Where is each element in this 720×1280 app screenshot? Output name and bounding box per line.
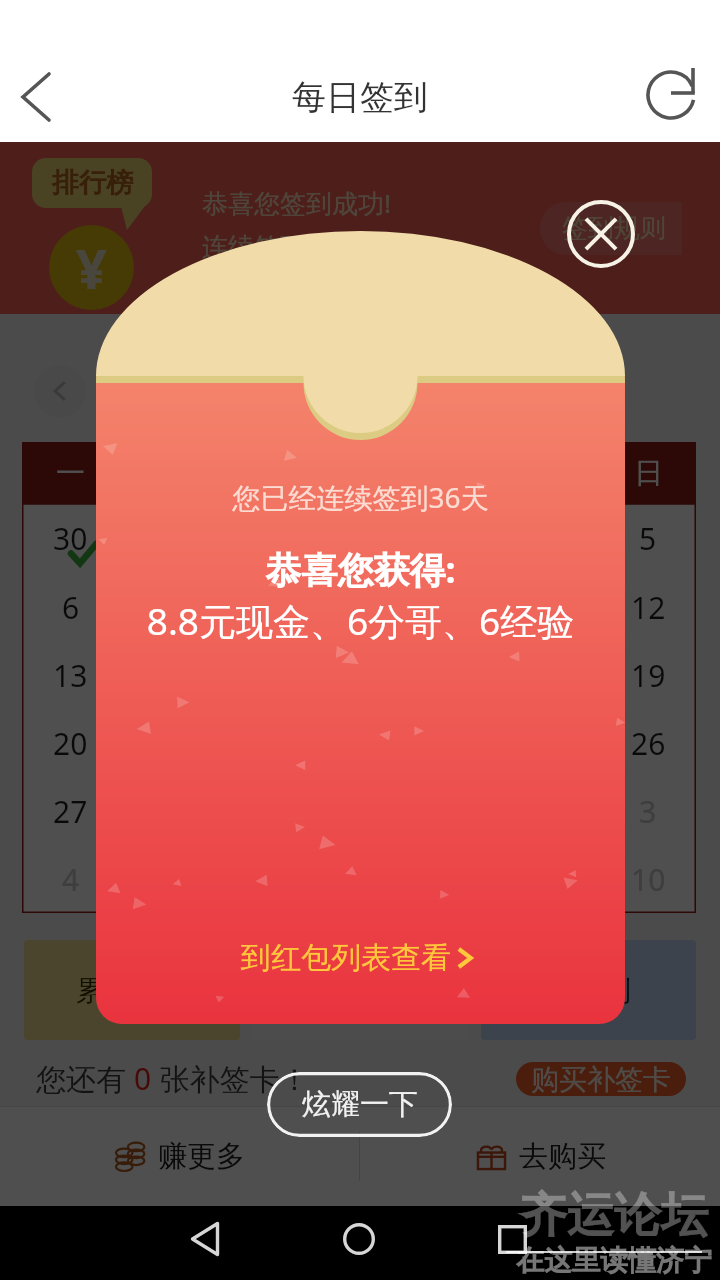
button[interactable]: 10 (408, 573, 504, 641)
button[interactable]: 19 (600, 641, 696, 709)
button[interactable]: 16 (312, 641, 408, 709)
button[interactable]: 9 (312, 573, 408, 641)
button[interactable]: Home (319, 1202, 399, 1276)
button[interactable]: 29 (216, 777, 312, 845)
button[interactable]: 排行榜 (32, 158, 152, 208)
button[interactable]: 18 (504, 641, 600, 709)
staticText: 26 (631, 723, 666, 764)
button[interactable]: 8 (408, 845, 504, 913)
button[interactable]: 26 (600, 709, 696, 777)
button[interactable]: 5 (119, 845, 216, 913)
button[interactable]: 6 (22, 573, 119, 641)
staticText: 7 (159, 587, 177, 628)
button[interactable]: 购买补签卡 (516, 1062, 686, 1096)
staticText: 连续签到36天 (202, 228, 362, 264)
button[interactable]: 6 (216, 845, 312, 913)
button[interactable]: 到红包列表查看 (96, 935, 625, 981)
staticText: 恭喜您获得: (96, 545, 625, 594)
button[interactable]: Close (567, 200, 635, 268)
button[interactable]: 20 (22, 709, 119, 777)
button[interactable]: 10 (600, 845, 696, 913)
button[interactable]: 30 (22, 504, 119, 573)
staticText: 张补签卡！ (152, 1058, 310, 1099)
staticText: 5 (639, 518, 657, 559)
staticText: 四 (346, 455, 375, 492)
button[interactable]: 2 (312, 504, 408, 573)
button[interactable]: 21 (119, 709, 216, 777)
staticText: 三 (250, 455, 279, 492)
staticText: 一 (56, 455, 85, 492)
staticText: 签到规则 (562, 212, 666, 245)
button[interactable]: 22 (216, 709, 312, 777)
button[interactable]: 9 (504, 845, 600, 913)
button[interactable]: 去购买 (360, 1106, 720, 1206)
button[interactable]: 赚更多 (0, 1106, 359, 1206)
button[interactable]: 30 (312, 777, 408, 845)
button[interactable]: 7 (119, 573, 216, 641)
staticText: 2 (351, 518, 369, 559)
button[interactable]: 24 (408, 709, 504, 777)
button[interactable]: 12 (600, 573, 696, 641)
staticText: 19 (631, 655, 666, 696)
staticText: 11 (535, 587, 570, 628)
button[interactable]: 23 (312, 709, 408, 777)
staticText: 在这里读懂济宁 (516, 1243, 712, 1278)
staticText: 10 (439, 587, 474, 628)
staticText: 五 (442, 455, 471, 492)
staticText: 10 (631, 859, 666, 900)
button[interactable]: 炫耀一下 (267, 1072, 452, 1137)
staticText: 到红包列表查看 (241, 939, 451, 977)
button[interactable]: 5 (600, 504, 696, 573)
staticText: 27 (53, 791, 88, 832)
button[interactable]: Recent apps (472, 1202, 552, 1276)
button[interactable]: 3 (600, 777, 696, 845)
button[interactable]: Back (165, 1202, 245, 1276)
button[interactable]: 13 (22, 641, 119, 709)
staticText: 9 (351, 587, 369, 628)
button[interactable]: 补签到 (481, 940, 696, 1040)
button[interactable]: 8 (216, 573, 312, 641)
staticText: 12 (631, 587, 666, 628)
button[interactable]: Back (0, 53, 72, 141)
staticText: ¥ (76, 231, 107, 305)
button[interactable]: Refresh (629, 53, 713, 137)
button[interactable]: 累计签到 (24, 940, 240, 1040)
button[interactable]: 14 (119, 641, 216, 709)
button[interactable]: 4 (22, 845, 119, 913)
staticText: 8.8元现金、6分哥、6经验 (96, 595, 625, 646)
button[interactable]: 兑换奖品 (253, 940, 468, 1040)
button[interactable]: 7 (312, 845, 408, 913)
button[interactable]: 27 (22, 777, 119, 845)
staticText: 恭喜您签到成功! (202, 185, 391, 221)
staticText: 每日签到 (0, 76, 720, 119)
button[interactable]: 1 (216, 504, 312, 573)
staticText: 7 (351, 859, 369, 900)
button[interactable]: 11 (504, 573, 600, 641)
staticText: 6 (255, 859, 273, 900)
button[interactable]: 3 (408, 504, 504, 573)
